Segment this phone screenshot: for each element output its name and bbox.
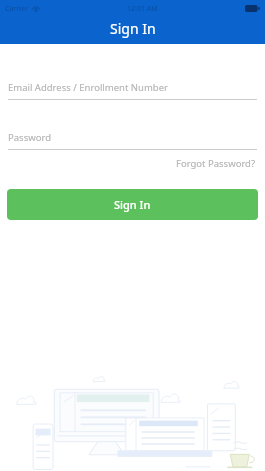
staticText: Sign In <box>114 197 151 212</box>
staticText: 12:01 AM <box>127 4 158 14</box>
staticText: Email Address / Enrollment Number <box>8 81 168 94</box>
staticText: Sign In <box>110 19 156 38</box>
staticText: Password <box>8 131 51 144</box>
other: Devices illustration <box>0 370 265 471</box>
staticText: Carrier <box>5 4 29 14</box>
button[interactable]: Forgot Password? <box>175 154 257 173</box>
button[interactable]: Password <box>8 125 257 150</box>
staticText: Forgot Password? <box>176 157 256 170</box>
button[interactable]: Sign In <box>7 189 258 220</box>
button[interactable]: Email Address / Enrollment Number <box>8 75 257 100</box>
